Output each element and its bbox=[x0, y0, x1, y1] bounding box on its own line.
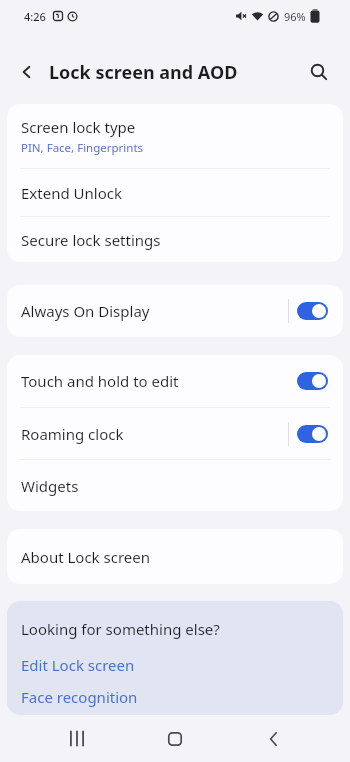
staticText: PIN, Face, Fingerprints bbox=[21, 140, 144, 156]
staticText: Touch and hold to edit bbox=[21, 371, 179, 391]
button[interactable] bbox=[224, 715, 322, 762]
button[interactable]: Always On Display bbox=[7, 285, 343, 337]
staticText: Extend Unlock bbox=[21, 183, 122, 203]
button[interactable] bbox=[14, 59, 40, 85]
staticText: Always On Display bbox=[21, 301, 150, 321]
staticText: About Lock screen bbox=[21, 547, 150, 567]
staticText: Widgets bbox=[21, 476, 79, 496]
button[interactable]: Roaming clock bbox=[7, 408, 343, 459]
button[interactable]: Secure lock settings bbox=[7, 217, 343, 262]
button[interactable]: Widgets bbox=[7, 460, 343, 511]
button[interactable] bbox=[305, 58, 333, 86]
staticText: Looking for something else? bbox=[21, 619, 220, 639]
button[interactable]: Extend Unlock bbox=[7, 169, 343, 216]
staticText: Lock screen and AOD bbox=[49, 60, 238, 85]
button[interactable] bbox=[28, 715, 126, 762]
staticText: Secure lock settings bbox=[21, 230, 161, 250]
staticText: 4:26 bbox=[24, 9, 46, 24]
staticText: 96% bbox=[284, 9, 306, 24]
button[interactable]: Face recognition bbox=[21, 687, 138, 707]
button[interactable]: About Lock screen bbox=[7, 529, 343, 584]
staticText: Roaming clock bbox=[21, 424, 124, 444]
button[interactable]: Screen lock type bbox=[7, 104, 343, 168]
button[interactable]: Touch and hold to edit bbox=[7, 355, 343, 407]
staticText: Screen lock type bbox=[21, 117, 136, 137]
button[interactable]: Edit Lock screen bbox=[21, 655, 135, 675]
button[interactable] bbox=[126, 715, 224, 762]
